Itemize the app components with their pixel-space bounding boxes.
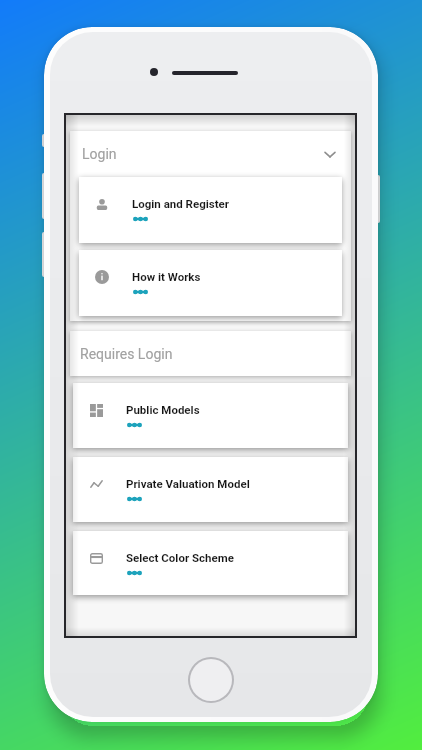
button[interactable]: Login xyxy=(70,131,351,177)
staticText: Public Models xyxy=(126,403,200,416)
button[interactable]: Private Valuation Model xyxy=(73,457,348,522)
staticText: Login xyxy=(82,146,325,162)
button[interactable]: How it Works xyxy=(79,250,342,316)
button[interactable]: Login and Register xyxy=(79,177,342,243)
button[interactable]: Public Models xyxy=(73,383,348,448)
staticText: Login and Register xyxy=(132,197,230,210)
staticText: How it Works xyxy=(132,270,201,283)
staticText: Requires Login xyxy=(80,346,351,362)
button[interactable]: Select Color Scheme xyxy=(73,531,348,595)
staticText: Select Color Scheme xyxy=(126,551,234,564)
staticText: Private Valuation Model xyxy=(126,477,250,490)
button[interactable]: Requires Login xyxy=(70,331,351,376)
